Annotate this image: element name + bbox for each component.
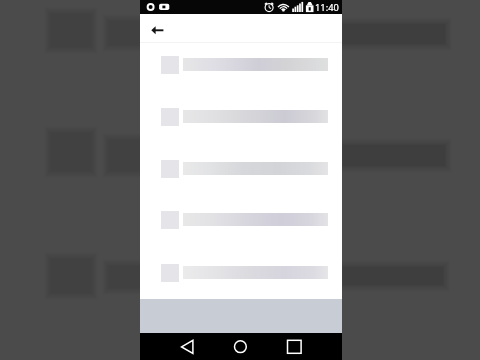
staticText: 11:40 xyxy=(315,1,339,14)
button[interactable]: Back xyxy=(173,333,201,360)
button[interactable] xyxy=(140,263,342,282)
button[interactable]: Back xyxy=(143,16,167,40)
button[interactable] xyxy=(140,55,342,74)
button[interactable]: Recent apps xyxy=(280,333,308,360)
button[interactable]: Home xyxy=(227,333,255,360)
button[interactable] xyxy=(140,107,342,126)
button[interactable] xyxy=(140,159,342,178)
button[interactable] xyxy=(140,210,342,229)
